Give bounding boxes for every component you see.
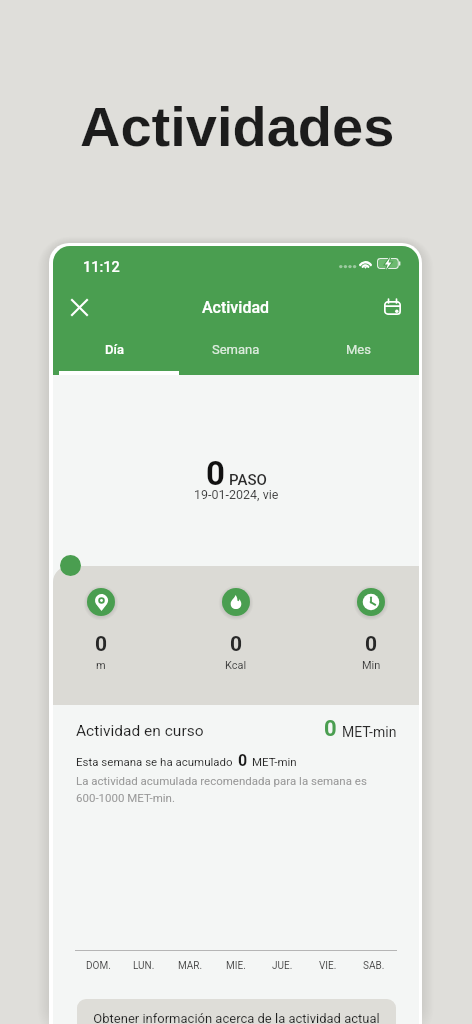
staticText: PASO — [229, 471, 267, 489]
button[interactable]: Close — [62, 290, 96, 324]
staticText: Kcal — [225, 659, 247, 672]
button[interactable]: Semana — [175, 332, 297, 366]
staticText: Actividades — [80, 95, 395, 158]
staticText: 0 — [238, 751, 248, 770]
staticText: 0 — [365, 632, 378, 657]
staticText: MET-min — [342, 724, 397, 740]
staticText: DOM. — [86, 960, 111, 972]
staticText: Semana — [212, 342, 260, 357]
staticText: La actividad acumulada recomendada para … — [76, 774, 376, 805]
staticText: Actividad — [202, 298, 270, 317]
staticText: LUN. — [133, 960, 155, 972]
staticText: MIE. — [226, 960, 246, 972]
staticText: SAB. — [363, 960, 385, 972]
staticText: Día — [105, 342, 124, 357]
staticText: 0 — [95, 632, 108, 657]
staticText: Min — [362, 659, 381, 672]
staticText: Mes — [346, 342, 371, 357]
button[interactable]: Activity progress — [60, 555, 81, 576]
staticText: 0 — [324, 716, 337, 742]
staticText: Actividad en curso — [76, 722, 204, 740]
staticText: 11:12 — [83, 259, 120, 276]
staticText: JUE. — [272, 960, 293, 972]
button[interactable]: Calendar — [375, 290, 409, 324]
staticText: VIE. — [319, 960, 337, 972]
button[interactable]: Obtener información acerca de la activid… — [77, 999, 396, 1024]
staticText: 0 — [230, 632, 243, 657]
button[interactable]: Mes — [297, 332, 419, 366]
staticText: 0 — [206, 454, 225, 493]
staticText: 19-01-2024, vie — [194, 487, 279, 502]
staticText: MAR. — [178, 960, 203, 972]
staticText: Obtener información acerca de la activid… — [93, 1011, 380, 1024]
button[interactable]: Día — [53, 332, 175, 366]
staticText: Esta semana se ha acumulado — [76, 755, 233, 768]
staticText: MET-min — [252, 755, 297, 768]
staticText: m — [96, 659, 106, 672]
